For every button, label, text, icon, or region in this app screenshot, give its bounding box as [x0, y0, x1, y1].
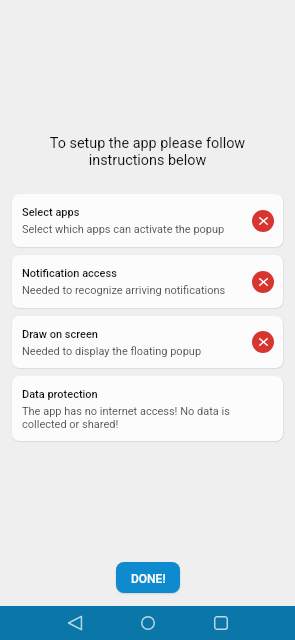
staticText: Needed to recognize arriving notificatio… [22, 284, 226, 297]
staticText: Select which apps can activate the popup [22, 223, 225, 236]
staticText: Data protection [22, 388, 98, 401]
staticText: Needed to display the floating popup [22, 345, 202, 358]
button[interactable]: DONE! [116, 562, 180, 593]
button[interactable]: Back [58, 606, 92, 640]
staticText: The app has no internet access! No data … [22, 405, 273, 431]
staticText: To setup the app please follow instructi… [24, 135, 271, 168]
staticText: Select apps [22, 206, 80, 219]
button[interactable]: Notification access [12, 255, 283, 308]
staticText: Draw on screen [22, 328, 98, 341]
button[interactable]: Data protection [12, 376, 283, 441]
button[interactable]: Draw on screen [12, 316, 283, 368]
staticText: DONE! [131, 572, 166, 586]
button[interactable]: Recent apps [204, 606, 238, 640]
button[interactable]: Home [131, 606, 165, 640]
button[interactable]: Permission not granted [252, 210, 274, 232]
button[interactable]: Permission not granted [252, 331, 274, 353]
button[interactable]: Permission not granted [252, 271, 274, 293]
button[interactable]: Select apps [12, 194, 283, 247]
staticText: Notification access [22, 267, 117, 280]
